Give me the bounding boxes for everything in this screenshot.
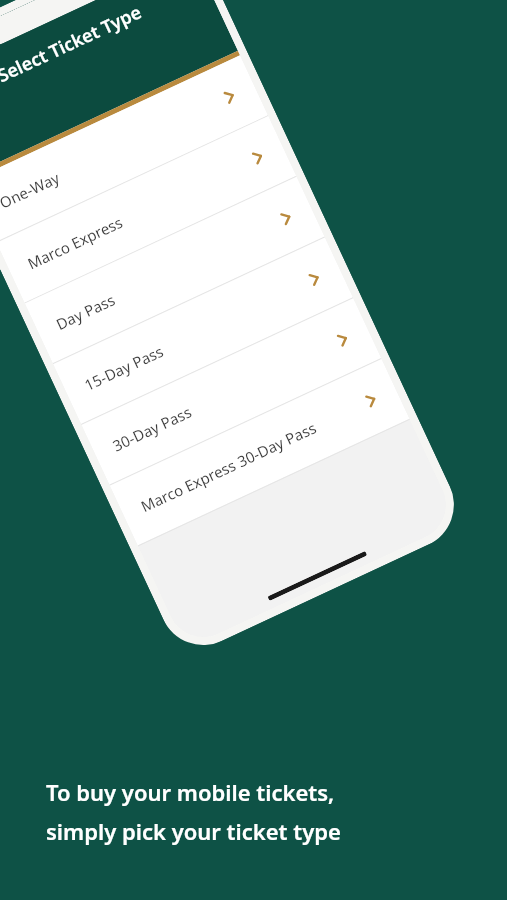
button[interactable]: One-Way (0, 55, 268, 242)
staticText: Select Ticket Type (0, 0, 146, 88)
button[interactable]: Marco Express 30-Day Pass (110, 359, 410, 545)
button[interactable]: Day Pass (25, 177, 325, 363)
staticText: 30-Day Pass (109, 333, 341, 455)
staticText: Day Pass (53, 212, 284, 334)
staticText: Marco Express (24, 151, 256, 273)
staticText: One-Way (0, 90, 227, 213)
button[interactable]: Marco Express (0, 116, 296, 303)
button[interactable]: 30-Day Pass (81, 298, 381, 485)
button[interactable]: 15-Day Pass (53, 237, 353, 424)
button[interactable]: Back (0, 109, 12, 168)
staticText: To buy your mobile tickets, (46, 777, 335, 807)
staticText: Marco Express 30-Day Pass (138, 394, 369, 516)
staticText: 15-Day Pass (81, 273, 312, 395)
staticText: simply pick your ticket type (46, 816, 341, 846)
